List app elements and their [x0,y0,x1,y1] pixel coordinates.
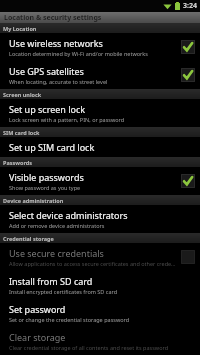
button[interactable]: Checked [181,68,195,82]
staticText: Show password as you type [9,184,81,191]
staticText: Clear storage [9,331,66,343]
staticText: Allow applications to access secure cert… [9,260,177,267]
staticText: Use wireless networks [9,37,103,49]
button[interactable]: Set up SIM card lock [0,137,200,157]
staticText: 3:24 [183,1,197,11]
staticText: Use secure credentials [9,247,104,259]
staticText: Credential storage [3,235,54,242]
staticText: Screen unlock [3,91,42,98]
staticText: Set up screen lock [9,103,86,115]
button[interactable]: Checked [181,174,195,188]
staticText: Use GPS satellites [9,65,84,77]
button[interactable]: Use secure credentials [0,243,200,271]
button[interactable]: Select device administrators [0,205,200,233]
staticText: Visible passwords [9,171,84,183]
staticText: Clear credential storage of all contents… [9,344,169,351]
button[interactable]: Clear storage [0,327,200,355]
staticText: Device administration [3,197,64,204]
staticText: Passwords [3,159,32,166]
staticText: SIM card lock [3,129,40,136]
staticText: Set or change the credential storage pas… [9,316,130,323]
staticText: Add or remove device administrators [9,222,105,229]
button[interactable]: Unchecked [181,250,195,264]
staticText: Install from SD card [9,275,93,287]
button[interactable]: Use GPS satellites [0,61,200,89]
button[interactable]: Set up screen lock [0,99,200,127]
staticText: My Location [3,25,37,32]
staticText: Set password [9,303,66,315]
staticText: When locating, accurate to street level [9,78,108,85]
staticText: Location determined by Wi-Fi and/or mobi… [9,50,148,57]
button[interactable]: Install from SD card [0,271,200,299]
button[interactable]: Visible passwords [0,167,200,195]
button[interactable]: Checked [181,40,195,54]
button[interactable]: Set password [0,299,200,327]
staticText: Select device administrators [9,209,128,221]
staticText: Install encrypted certificates from SD c… [9,288,118,295]
button[interactable]: Use wireless networks [0,33,200,61]
staticText: Set up SIM card lock [9,141,95,153]
staticText: Lock screen with a pattern, PIN, or pass… [9,116,125,123]
staticText: Location & security settings [4,13,102,23]
